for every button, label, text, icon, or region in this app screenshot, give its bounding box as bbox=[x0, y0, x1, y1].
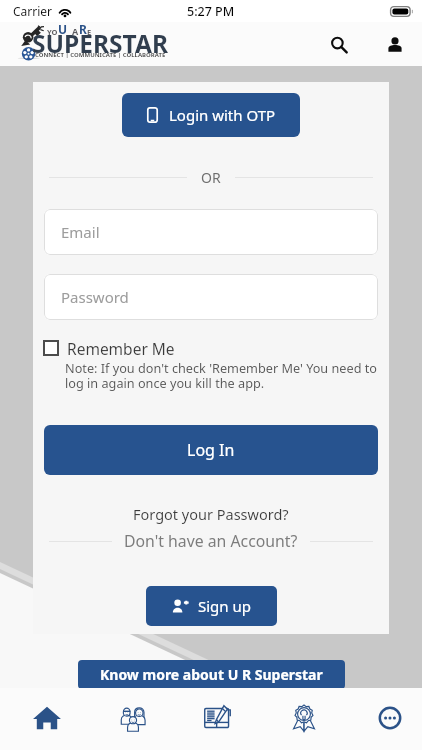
button[interactable]: More bbox=[347, 688, 422, 750]
button[interactable]: Home bbox=[4, 688, 89, 750]
staticText: E bbox=[87, 27, 92, 37]
staticText: 5:27 PM bbox=[187, 3, 235, 20]
button[interactable]: Profile bbox=[375, 24, 415, 64]
staticText: Don't have an Account? bbox=[124, 530, 298, 552]
button[interactable]: Search bbox=[319, 24, 359, 64]
button[interactable]: Email bbox=[44, 209, 378, 255]
staticText: Remember Me bbox=[67, 338, 175, 358]
staticText: Know more about U R Superstar bbox=[100, 665, 323, 684]
staticText: CONNECT | COMMUNICATE | COLLABORATE bbox=[35, 51, 166, 59]
button[interactable]: Awards bbox=[261, 688, 346, 750]
staticText: R bbox=[79, 21, 87, 37]
button[interactable]: Login with OTP bbox=[122, 93, 300, 137]
staticText: YO bbox=[47, 27, 58, 37]
button[interactable]: Forgot your Password? bbox=[129, 500, 293, 528]
staticText: Sign up bbox=[198, 596, 251, 616]
staticText: U bbox=[58, 21, 68, 37]
button[interactable]: Sign up bbox=[146, 586, 277, 626]
staticText: Carrier bbox=[13, 3, 53, 19]
staticText: Login with OTP bbox=[169, 105, 276, 125]
staticText: SUPERSTAR bbox=[32, 27, 168, 60]
staticText: Log In bbox=[187, 439, 235, 461]
staticText: A bbox=[72, 25, 79, 37]
staticText: OR bbox=[201, 168, 221, 187]
button[interactable]: Password bbox=[44, 274, 378, 320]
staticText: Password bbox=[61, 287, 129, 307]
button[interactable]: Activities bbox=[175, 688, 260, 750]
staticText: Email bbox=[61, 222, 100, 242]
button[interactable]: Log In bbox=[44, 425, 378, 475]
button[interactable]: Community bbox=[90, 688, 175, 750]
button[interactable]: Remember Me bbox=[43, 338, 175, 358]
button[interactable]: Know more about U R Superstar bbox=[78, 660, 345, 689]
staticText: Note: If you don't check 'Remember Me' Y… bbox=[65, 359, 378, 391]
